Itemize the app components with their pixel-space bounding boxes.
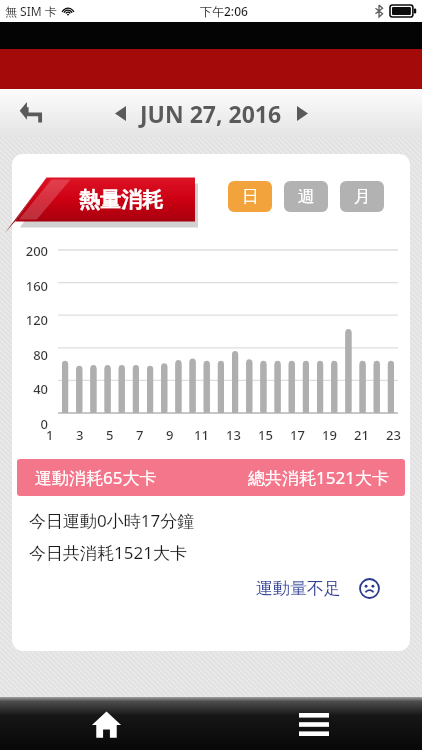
staticText: 1 bbox=[46, 426, 54, 444]
button[interactable]: 月 bbox=[340, 181, 384, 212]
staticText: 9 bbox=[166, 426, 174, 444]
staticText: 13 bbox=[226, 426, 241, 444]
staticText: 40 bbox=[12, 380, 48, 398]
staticText: 0 bbox=[12, 415, 48, 433]
button[interactable]: 日 bbox=[228, 181, 272, 212]
staticText: 7 bbox=[136, 426, 144, 444]
button[interactable]: JUN 27, 2016 bbox=[140, 98, 282, 129]
staticText: 23 bbox=[386, 426, 401, 444]
staticText: 19 bbox=[322, 426, 337, 444]
staticText: 17 bbox=[290, 426, 305, 444]
staticText: 運動消耗65大卡 bbox=[35, 466, 157, 489]
button[interactable]: Next day bbox=[284, 95, 320, 131]
staticText: 160 bbox=[12, 277, 48, 295]
staticText: 無 SIM 卡 bbox=[5, 3, 57, 19]
staticText: 熱量消耗 bbox=[79, 187, 163, 213]
staticText: 120 bbox=[12, 311, 48, 329]
button[interactable]: 運動消耗65大卡 bbox=[17, 459, 405, 496]
button[interactable]: 熱量消耗 bbox=[0, 167, 198, 235]
staticText: 週 bbox=[298, 186, 315, 207]
staticText: 日 bbox=[242, 186, 259, 207]
staticText: 11 bbox=[194, 426, 209, 444]
staticText: 今日共消耗1521大卡 bbox=[29, 541, 187, 564]
staticText: 今日運動0小時17分鐘 bbox=[29, 509, 195, 532]
staticText: 5 bbox=[106, 426, 114, 444]
button[interactable]: 運動量不足 bbox=[256, 578, 380, 599]
staticText: 3 bbox=[76, 426, 84, 444]
staticText: 200 bbox=[12, 242, 48, 260]
staticText: 下午2:06 bbox=[200, 3, 248, 19]
button[interactable]: Back bbox=[8, 90, 54, 136]
staticText: 總共消耗1521大卡 bbox=[248, 466, 389, 489]
button[interactable]: Home bbox=[82, 700, 130, 748]
staticText: 月 bbox=[354, 186, 371, 207]
button[interactable]: Previous day bbox=[102, 95, 138, 131]
button[interactable]: 週 bbox=[284, 181, 328, 212]
button[interactable]: Menu bbox=[290, 700, 338, 748]
staticText: 80 bbox=[12, 346, 48, 364]
staticText: 15 bbox=[258, 426, 273, 444]
staticText: 21 bbox=[354, 426, 369, 444]
staticText: 運動量不足 bbox=[256, 578, 341, 599]
